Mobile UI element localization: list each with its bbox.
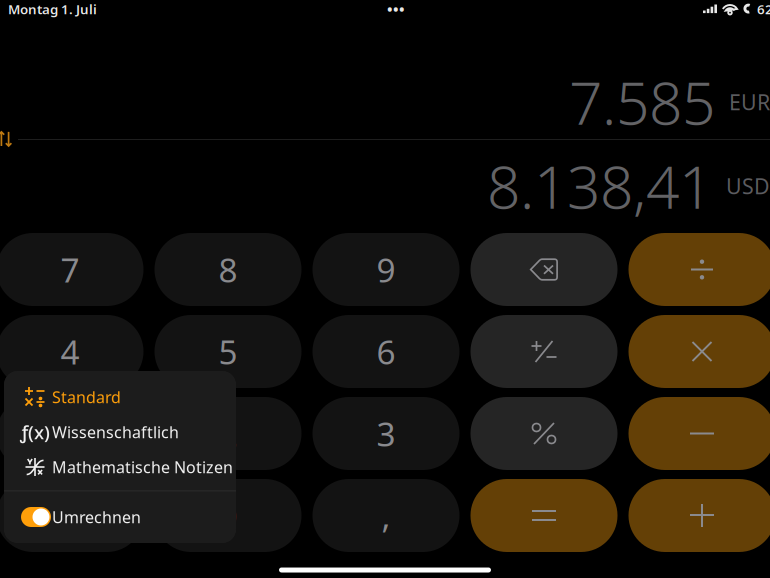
staticText: EUR [729,88,770,116]
button[interactable]: 8 [154,233,301,306]
button[interactable]: 5 [154,315,301,388]
button[interactable]: 9 [312,233,459,306]
button[interactable]: 4 [0,315,143,388]
staticText: Umrechnen [52,506,141,528]
button[interactable]: Umrechnen [4,491,236,542]
button[interactable]: Standard [4,379,236,414]
button[interactable]: Vorzeichen wechseln [470,315,617,388]
staticText: 6 [376,329,395,374]
staticText: 5 [218,329,237,374]
staticText: 3 [376,411,395,456]
button[interactable]: , [312,479,459,552]
staticText: C [59,493,80,538]
staticText: Wissenschaftlich [52,421,179,443]
staticText: , [381,493,390,538]
button[interactable]: Gleich [470,479,617,552]
staticText: 9 [376,247,395,292]
button[interactable]: C [0,479,143,552]
staticText: Standard [52,386,121,408]
button[interactable]: Addieren [628,479,770,552]
button[interactable]: 0 [154,479,301,552]
staticText: 7 [60,247,79,292]
button[interactable]: 6 [312,315,459,388]
button[interactable]: Mathematische Notizen [4,449,236,484]
button[interactable]: Prozent [470,397,617,470]
button[interactable]: ƒ(x) [4,414,236,449]
staticText: 8.138,41 [487,147,712,225]
button[interactable]: Subtrahieren [628,397,770,470]
staticText: 1 [60,411,79,456]
staticText: Montag 1. Juli [8,0,97,18]
staticText: 8 [218,247,237,292]
staticText: ••• [387,0,405,19]
button[interactable]: 3 [312,397,459,470]
button[interactable]: 2 [154,397,301,470]
button[interactable]: 1 [0,397,143,470]
staticText: 4 [60,329,79,374]
staticText: ƒ(x) [20,420,50,444]
staticText: USD [726,172,770,200]
button[interactable]: Währungen tauschen [0,130,12,147]
button[interactable]: Löschen [470,233,617,306]
staticText: 7.585 [569,63,715,141]
staticText: Mathematische Notizen [52,456,233,478]
staticText: 62 % [757,0,770,18]
staticText: 0 [218,493,237,538]
button[interactable]: 7 [0,233,143,306]
button[interactable]: Dividieren [628,233,770,306]
button[interactable]: Multiplizieren [628,315,770,388]
